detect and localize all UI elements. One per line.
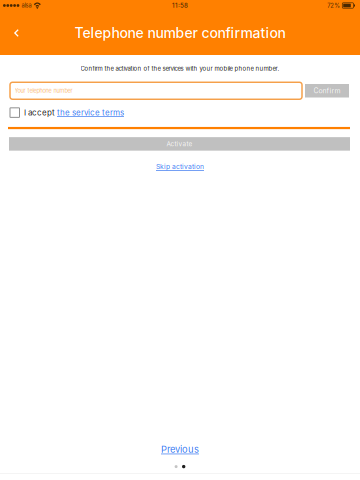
staticText: the service terms [57, 108, 124, 117]
staticText: Confirm [313, 87, 340, 95]
staticText: Previous [161, 444, 199, 455]
staticText: I accept [24, 108, 57, 117]
staticText: Confirm the activation of the services w… [80, 65, 279, 72]
button[interactable]: Confirm [305, 84, 349, 97]
staticText: Telephone number confirmation [74, 24, 285, 41]
button[interactable]: Back [0, 10, 33, 55]
button[interactable]: Skip activation [156, 163, 204, 171]
staticText: Skip activation [156, 163, 204, 171]
button[interactable]: Activate [9, 137, 350, 151]
staticText: 72% [327, 2, 340, 9]
staticText: Your telephone number [14, 87, 72, 94]
staticText: alsa [21, 2, 31, 9]
button[interactable]: Previous [161, 444, 199, 455]
staticText: 11:58 [172, 2, 188, 9]
staticText: Activate [166, 140, 192, 148]
button[interactable]: I accept [10, 108, 124, 117]
